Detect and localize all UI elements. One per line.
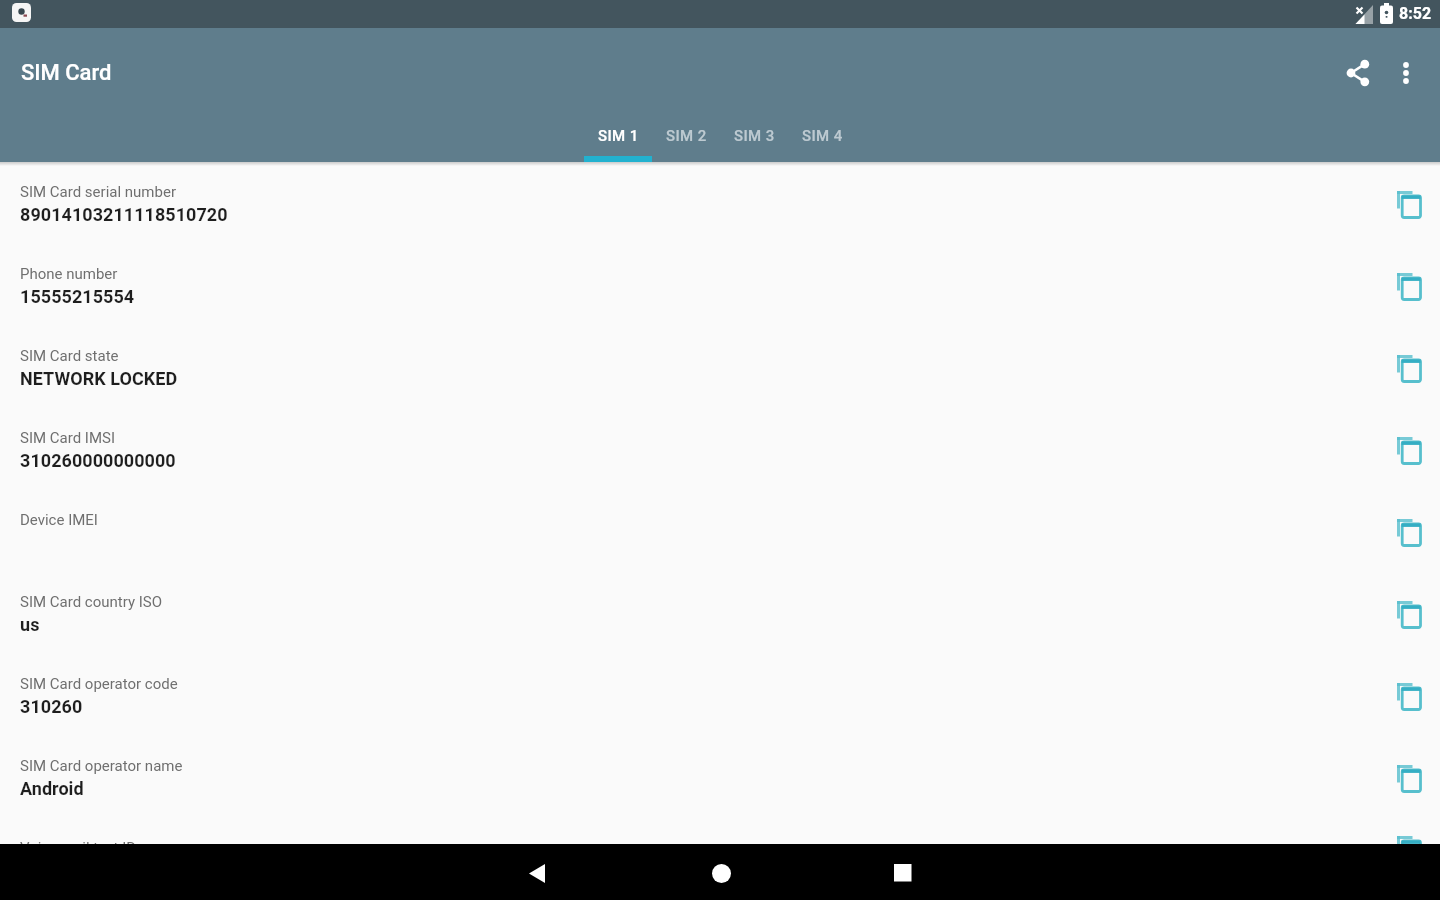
- staticText: SIM 4: [802, 127, 843, 145]
- button[interactable]: [1385, 672, 1433, 720]
- button[interactable]: SIM 2: [652, 118, 720, 162]
- button[interactable]: [1335, 49, 1383, 97]
- staticText: SIM Card IMSI: [20, 429, 116, 447]
- staticText: SIM Card country ISO: [20, 593, 163, 611]
- button[interactable]: Phone number: [0, 244, 1440, 326]
- staticText: 310260: [20, 696, 83, 717]
- button[interactable]: [1382, 49, 1430, 97]
- button[interactable]: [1385, 426, 1433, 474]
- button[interactable]: Device IMEI: [0, 490, 1440, 572]
- staticText: NETWORK LOCKED: [20, 368, 178, 389]
- button[interactable]: [1385, 590, 1433, 638]
- button[interactable]: SIM Card operator code: [0, 654, 1440, 736]
- button[interactable]: [1385, 754, 1433, 802]
- button[interactable]: [697, 849, 745, 897]
- staticText: 310260000000000: [20, 450, 176, 471]
- staticText: 8:52: [1399, 4, 1432, 23]
- button[interactable]: SIM Card state: [0, 326, 1440, 408]
- button[interactable]: [1385, 262, 1433, 310]
- button[interactable]: [513, 849, 561, 897]
- staticText: Device IMEI: [20, 511, 98, 529]
- staticText: Phone number: [20, 265, 118, 283]
- staticText: SIM Card state: [20, 347, 119, 365]
- staticText: SIM Card operator code: [20, 675, 178, 693]
- button[interactable]: SIM Card serial number: [0, 162, 1440, 244]
- button[interactable]: SIM Card operator name: [0, 736, 1440, 818]
- button[interactable]: SIM Card IMSI: [0, 408, 1440, 490]
- staticText: 15555215554: [20, 286, 135, 307]
- button[interactable]: SIM 1: [584, 118, 652, 162]
- button[interactable]: [1385, 508, 1433, 556]
- staticText: us: [20, 614, 40, 635]
- button[interactable]: Voice mail text ID: [0, 818, 1440, 844]
- staticText: SIM Card operator name: [20, 757, 183, 775]
- staticText: SIM Card: [21, 60, 112, 86]
- staticText: SIM 2: [666, 127, 707, 145]
- staticText: 89014103211118510720: [20, 204, 228, 225]
- button[interactable]: SIM 3: [720, 118, 788, 162]
- button[interactable]: [1385, 836, 1433, 844]
- button[interactable]: [1385, 180, 1433, 228]
- staticText: Voice mail text ID: [20, 839, 137, 844]
- button[interactable]: [1385, 344, 1433, 392]
- button[interactable]: [879, 849, 927, 897]
- button[interactable]: SIM 4: [788, 118, 856, 162]
- staticText: SIM 3: [734, 127, 775, 145]
- button[interactable]: SIM Card country ISO: [0, 572, 1440, 654]
- staticText: SIM Card serial number: [20, 183, 176, 201]
- staticText: SIM 1: [598, 127, 639, 145]
- staticText: Android: [20, 778, 84, 799]
